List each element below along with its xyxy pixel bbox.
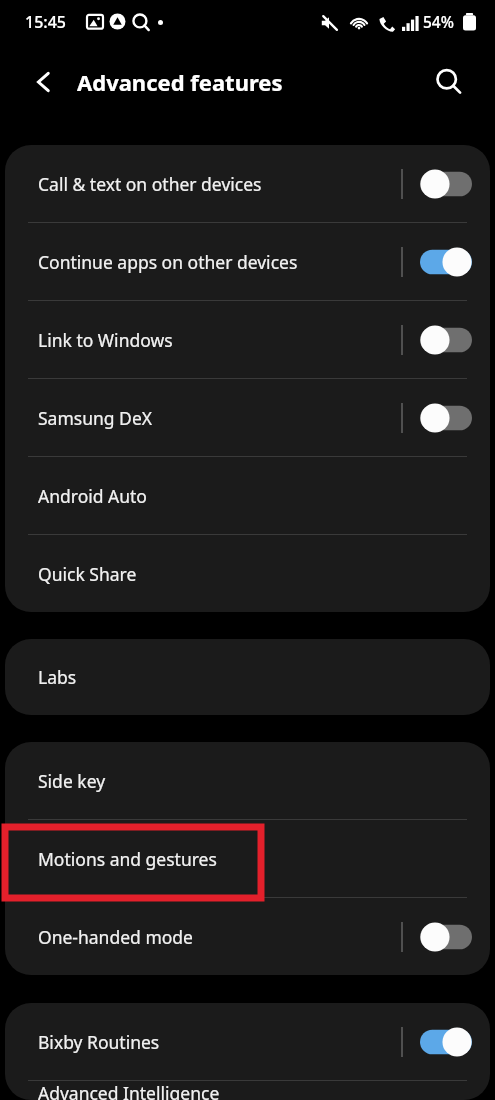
staticText: Android Auto (38, 484, 490, 508)
staticText: Bixby Routines (38, 1030, 401, 1054)
button[interactable]: Bixby Routines (420, 1027, 472, 1057)
button[interactable]: One-handed mode (420, 922, 472, 952)
button[interactable]: Search (426, 59, 472, 105)
button[interactable]: Motions and gestures (5, 820, 490, 897)
button[interactable]: Labs (5, 639, 490, 715)
button[interactable]: Continue apps on other devices (5, 223, 490, 300)
button[interactable]: Link to Windows (420, 325, 472, 355)
button[interactable]: Samsung DeX (420, 403, 472, 433)
staticText: 54% (423, 11, 454, 32)
button[interactable]: Call & text on other devices (420, 169, 472, 199)
staticText: Samsung DeX (38, 406, 401, 430)
staticText: Motions and gestures (38, 847, 490, 871)
staticText: Advanced features (77, 67, 283, 97)
staticText: Link to Windows (38, 328, 401, 352)
staticText: One-handed mode (38, 925, 401, 949)
staticText: Side key (38, 769, 490, 793)
button[interactable]: Samsung DeX (5, 379, 490, 456)
button[interactable]: Android Auto (5, 457, 490, 534)
staticText: Advanced Intelligence (38, 1081, 490, 1100)
button[interactable]: Back (20, 59, 66, 105)
button[interactable]: Bixby Routines (5, 1003, 490, 1080)
button[interactable]: One-handed mode (5, 898, 490, 975)
button[interactable]: Call & text on other devices (5, 145, 490, 222)
staticText: 15:45 (25, 11, 66, 33)
staticText: Call & text on other devices (38, 172, 401, 196)
staticText: Labs (38, 665, 490, 689)
button[interactable]: Link to Windows (5, 301, 490, 378)
staticText: Quick Share (38, 562, 490, 586)
button[interactable]: Advanced Intelligence (5, 1081, 490, 1100)
staticText: Continue apps on other devices (38, 250, 401, 274)
button[interactable]: Side key (5, 742, 490, 819)
button[interactable]: Continue apps on other devices (420, 247, 472, 277)
button[interactable]: Quick Share (5, 535, 490, 612)
